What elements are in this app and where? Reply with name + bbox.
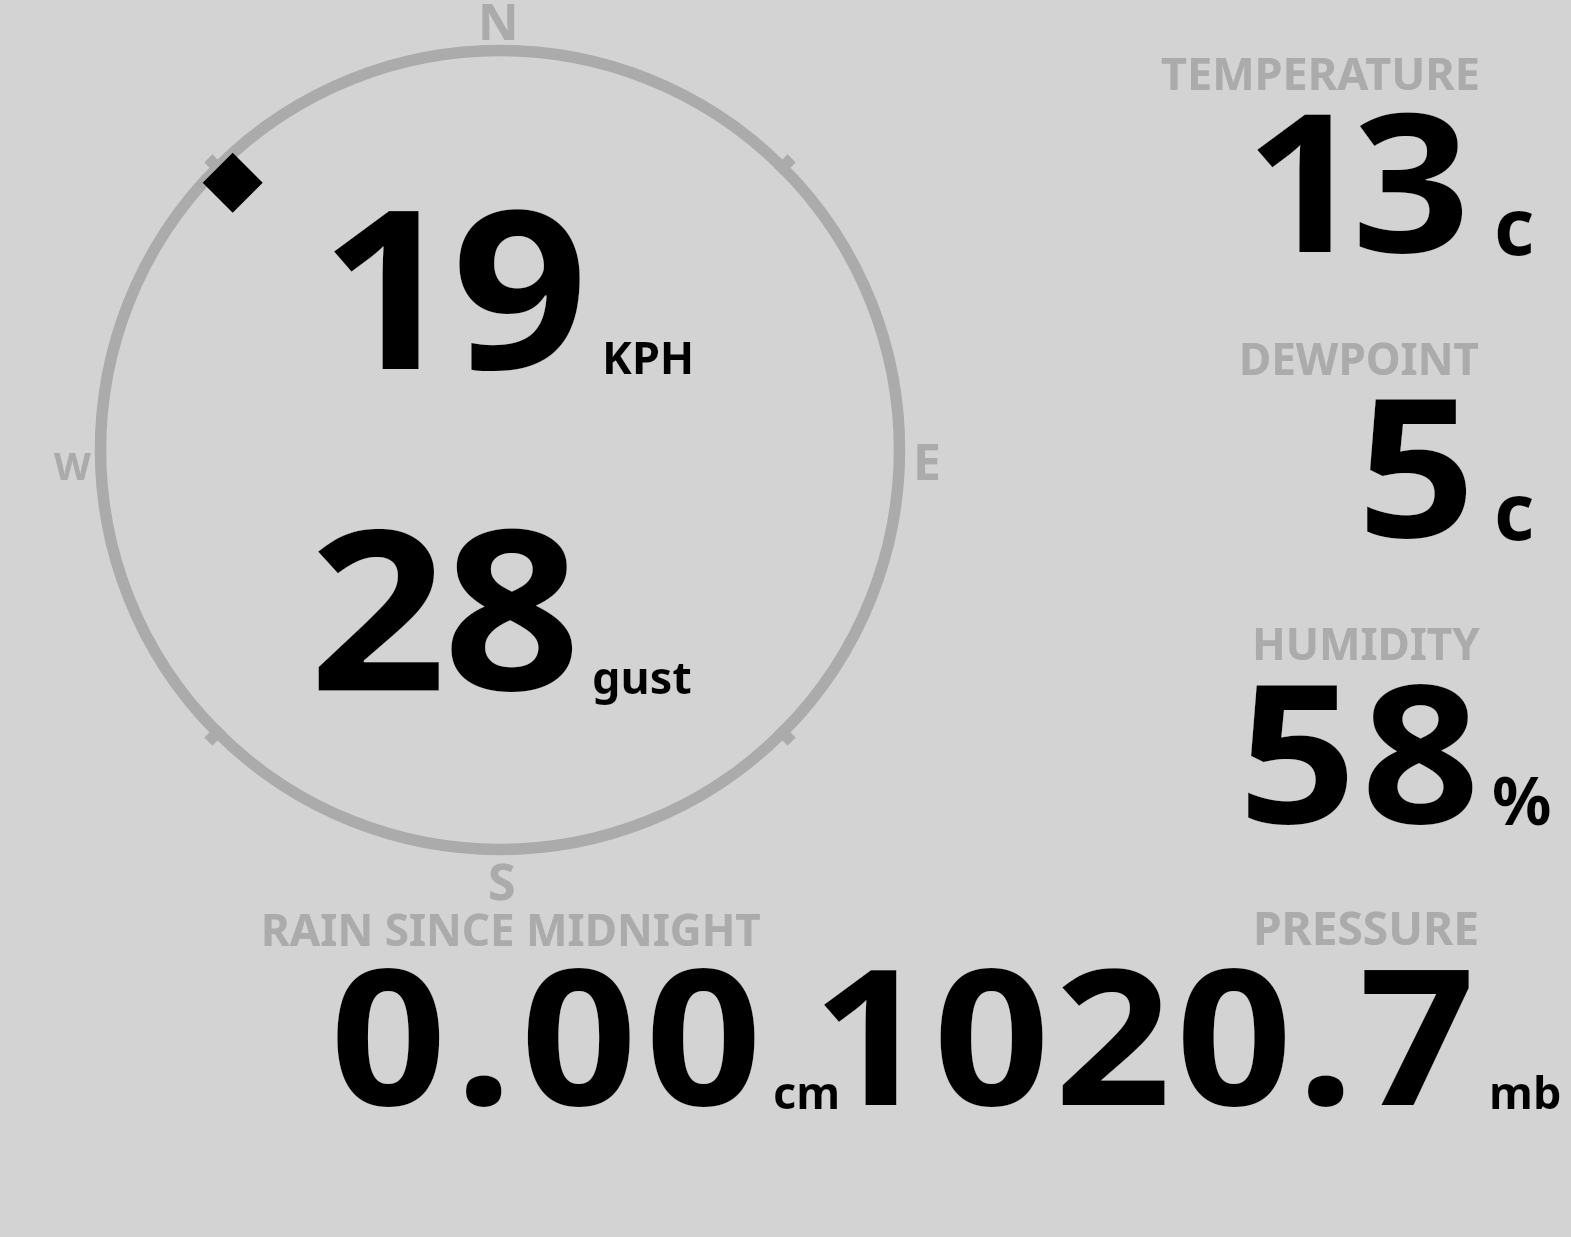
staticText: KPH xyxy=(602,326,695,387)
staticText: c xyxy=(1494,457,1535,563)
button[interactable]: Pressure 1020.7 mb xyxy=(1080,880,1571,1130)
staticText: 5 xyxy=(1357,332,1476,594)
button[interactable]: Wind speed and direction xyxy=(60,10,960,900)
staticText: N xyxy=(478,0,519,55)
button[interactable]: Dewpoint 5 degrees C xyxy=(1080,310,1571,560)
staticText: DEWPOINT xyxy=(1239,328,1479,388)
staticText: W xyxy=(54,439,91,491)
staticText: S xyxy=(488,847,516,915)
staticText: 28 xyxy=(309,452,577,756)
button[interactable]: Rain since midnight 0.00 cm xyxy=(230,880,850,1130)
button[interactable]: Humidity 58 percent xyxy=(1080,600,1571,850)
staticText: E xyxy=(913,427,941,495)
staticText: % xyxy=(1492,754,1552,844)
staticText: 58 xyxy=(1238,618,1485,880)
staticText: PRESSURE xyxy=(1253,896,1479,959)
staticText: RAIN SINCE MIDNIGHT xyxy=(261,899,761,959)
staticText: c xyxy=(1494,172,1535,278)
button[interactable]: Temperature 13 degrees C xyxy=(1080,30,1571,280)
staticText: HUMIDITY xyxy=(1252,613,1480,673)
staticText: gust xyxy=(592,646,692,707)
staticText: 13 xyxy=(1245,47,1459,309)
staticText: 19 xyxy=(320,133,583,434)
staticText: mb xyxy=(1489,1061,1562,1122)
staticText: TEMPERATURE xyxy=(1161,42,1480,103)
staticText: cm xyxy=(773,1061,841,1122)
staticText: 0.00 xyxy=(330,903,771,1160)
staticText: 1020.7 xyxy=(812,903,1480,1160)
